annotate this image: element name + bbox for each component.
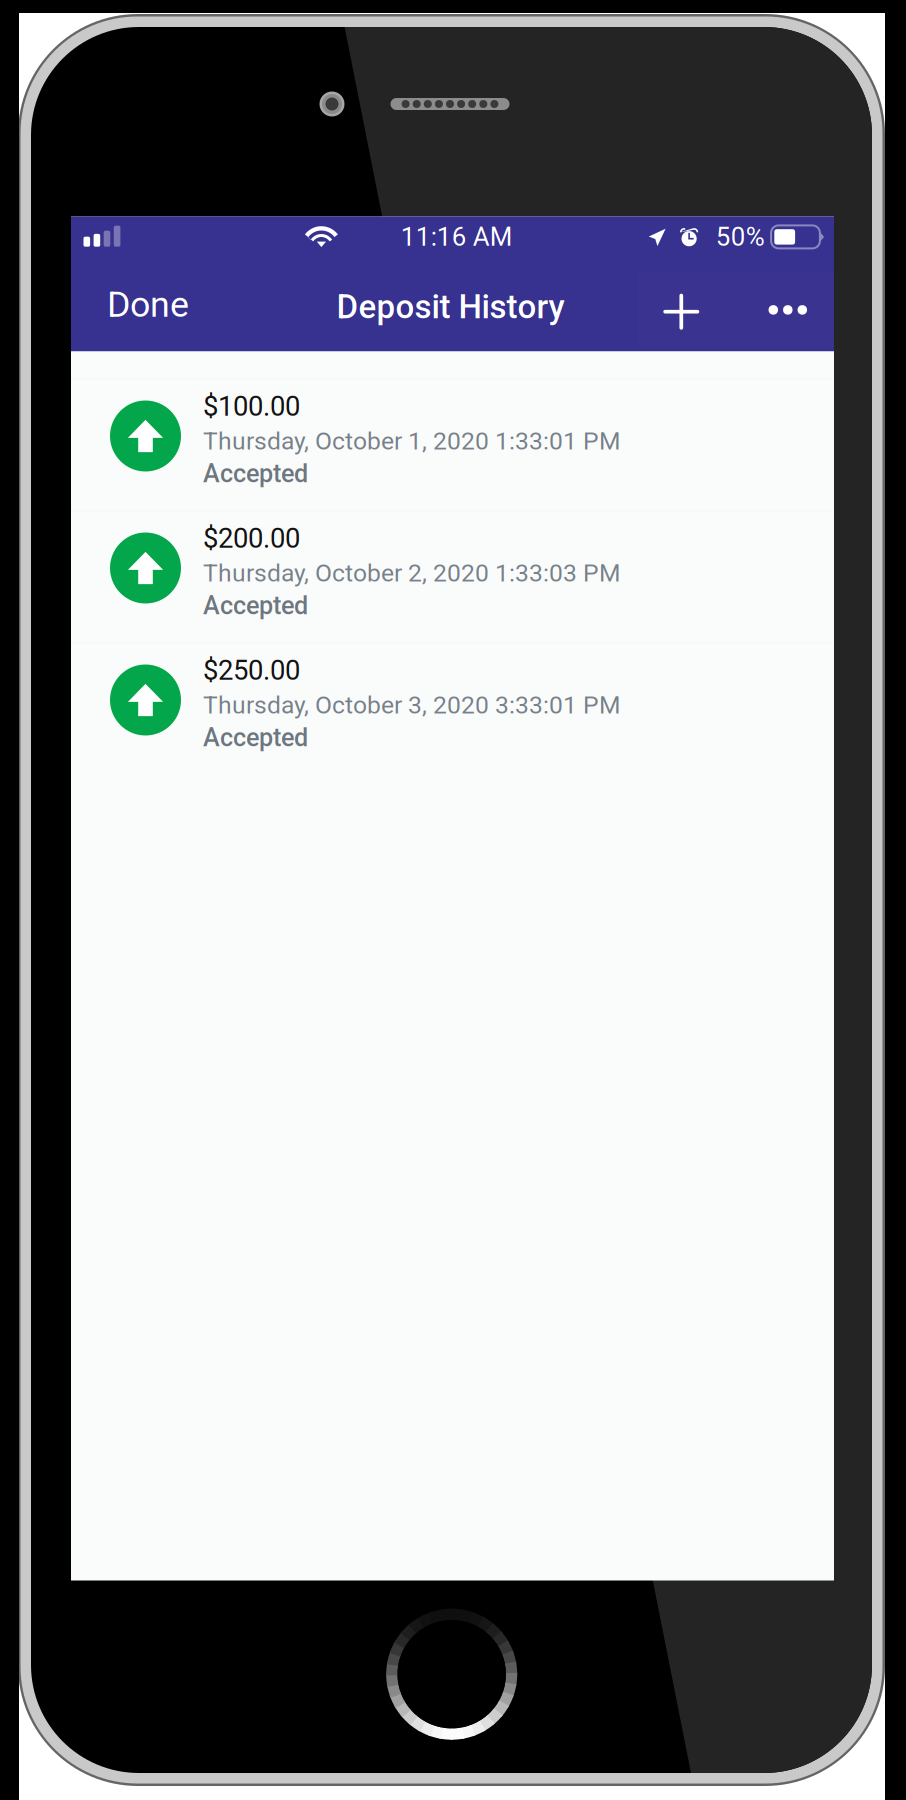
button[interactable]: $250.00 bbox=[71, 642, 834, 774]
staticText: Accepted bbox=[203, 459, 308, 488]
button[interactable]: $100.00 bbox=[71, 378, 834, 510]
staticText: Done bbox=[107, 284, 189, 325]
staticText: 11:16 AM bbox=[401, 222, 513, 252]
staticText: Thursday, October 1, 2020 1:33:01 PM bbox=[203, 427, 621, 455]
staticText: $250.00 bbox=[203, 654, 300, 686]
staticText: Thursday, October 2, 2020 1:33:03 PM bbox=[203, 559, 621, 587]
staticText: $200.00 bbox=[203, 522, 300, 554]
button[interactable]: Done bbox=[88, 257, 208, 351]
staticText: Deposit History bbox=[336, 288, 564, 326]
staticText: Accepted bbox=[203, 723, 308, 752]
staticText: Thursday, October 3, 2020 3:33:01 PM bbox=[203, 691, 621, 719]
button[interactable]: Add deposit bbox=[637, 265, 725, 359]
staticText: 50% bbox=[716, 222, 765, 252]
button[interactable]: $200.00 bbox=[71, 510, 834, 642]
staticText: $100.00 bbox=[203, 390, 300, 422]
button[interactable]: More options bbox=[749, 263, 827, 357]
staticText: Accepted bbox=[203, 591, 308, 620]
